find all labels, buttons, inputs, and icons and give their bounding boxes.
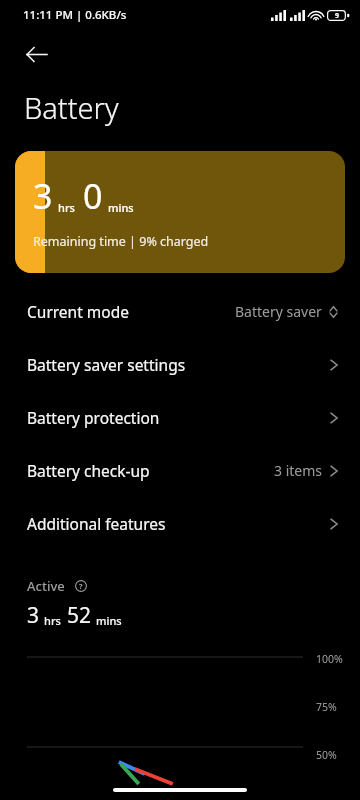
staticText: 100% [316,652,343,666]
staticText: Battery check-up [27,460,150,481]
staticText: 52 [67,601,92,630]
staticText: mins [96,613,122,628]
button[interactable]: Additional features [0,497,360,550]
staticText: 3 items [274,461,323,480]
staticText: Battery saver settings [27,354,186,375]
button[interactable]: Battery saver settings [0,338,360,391]
staticText: Battery [24,88,119,127]
button[interactable]: Battery protection [0,391,360,444]
button[interactable]: Current mode [0,285,360,338]
staticText: Remaining time | 9% charged [33,233,209,250]
staticText: 75% [316,700,337,714]
staticText: Battery protection [27,407,160,428]
staticText: Additional features [27,513,166,534]
staticText: 9 [335,11,340,21]
button[interactable]: 3 [15,151,345,273]
staticText: Active [27,577,65,595]
staticText: 3 [33,173,53,219]
staticText: hrs [58,200,75,215]
staticText: ? [79,581,83,591]
staticText: Current mode [27,301,129,322]
button[interactable]: Help about active time [71,576,91,596]
staticText: 11:11 PM | 0.6KB/s [23,7,127,23]
button[interactable]: Battery check-up [0,444,360,497]
staticText: Battery saver [235,302,322,321]
staticText: mins [108,200,134,215]
staticText: 0 [83,173,103,219]
staticText: 50% [316,748,337,762]
button[interactable]: Back [12,30,60,78]
staticText: hrs [44,613,61,628]
staticText: 3 [27,601,40,630]
